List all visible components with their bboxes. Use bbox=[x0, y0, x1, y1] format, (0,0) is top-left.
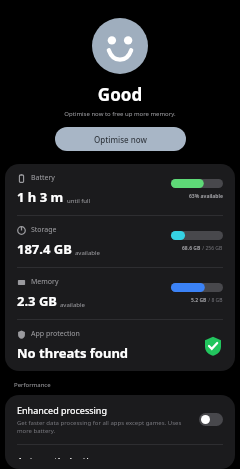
staticText: 5.2 GB bbox=[191, 297, 207, 304]
staticText: available bbox=[60, 301, 85, 309]
staticText: / 8 GB bbox=[207, 297, 223, 304]
staticText: 2.3 GB bbox=[17, 292, 57, 310]
staticText: Memory bbox=[31, 277, 59, 287]
staticText: until full bbox=[67, 197, 91, 205]
staticText: Optimise now to free up more memory. bbox=[0, 110, 240, 118]
button[interactable]: Battery bbox=[5, 164, 235, 215]
button[interactable]: Storage bbox=[5, 216, 235, 267]
staticText: Auto optimisation bbox=[17, 455, 101, 459]
staticText: 187.4 GB bbox=[17, 240, 72, 258]
staticText: / 256 GB bbox=[201, 245, 223, 252]
button[interactable]: Optimise now bbox=[55, 127, 186, 151]
staticText: 1 h 3 m bbox=[17, 188, 64, 206]
button[interactable]: Auto optimisation bbox=[5, 445, 235, 469]
staticText: Get faster data processing for all apps … bbox=[17, 419, 191, 435]
staticText: Battery bbox=[31, 173, 55, 183]
staticText: Performance bbox=[14, 381, 51, 389]
staticText: 63% available bbox=[189, 193, 223, 200]
staticText: Good bbox=[0, 83, 240, 106]
staticText: Enhanced processing bbox=[17, 404, 107, 416]
staticText: available bbox=[75, 249, 100, 257]
staticText: 68.6 GB bbox=[182, 245, 201, 252]
button[interactable]: Memory bbox=[5, 268, 235, 319]
staticText: Optimise now bbox=[94, 134, 147, 145]
staticText: No threats found bbox=[17, 344, 129, 362]
staticText: App protection bbox=[31, 329, 80, 339]
button[interactable]: Enhanced processing toggle bbox=[199, 413, 223, 426]
button[interactable]: Enhanced processing bbox=[5, 395, 235, 444]
staticText: Storage bbox=[31, 225, 57, 235]
button[interactable]: App protection bbox=[5, 320, 235, 371]
